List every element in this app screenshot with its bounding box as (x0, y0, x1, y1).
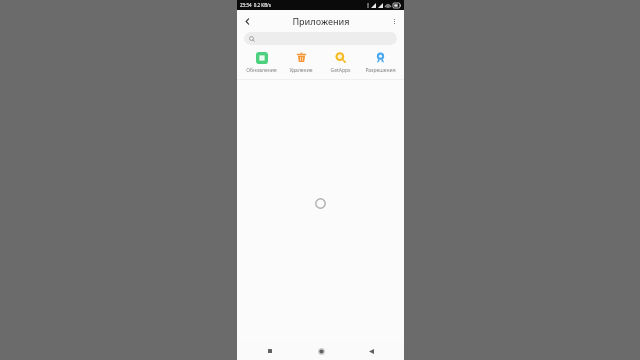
button[interactable]: Back (364, 344, 378, 358)
staticText: Обновления (246, 67, 277, 74)
button[interactable]: GetApps (321, 51, 359, 74)
staticText: 23:34 0.2 KB/s (240, 2, 271, 8)
staticText: Приложения (292, 15, 350, 27)
staticText: Разрешения (365, 67, 396, 74)
button[interactable]: Back (237, 11, 257, 31)
button[interactable]: More options (384, 11, 404, 31)
button[interactable]: Recents (263, 344, 277, 358)
button[interactable]: Home (314, 344, 328, 358)
button[interactable]: Удаление (282, 51, 320, 74)
staticText: GetApps (330, 67, 351, 74)
button[interactable]: Обновления (242, 51, 280, 74)
staticText: Удаление (289, 67, 313, 74)
button[interactable]: Разрешения (361, 51, 399, 74)
button[interactable]: Search (244, 32, 397, 45)
